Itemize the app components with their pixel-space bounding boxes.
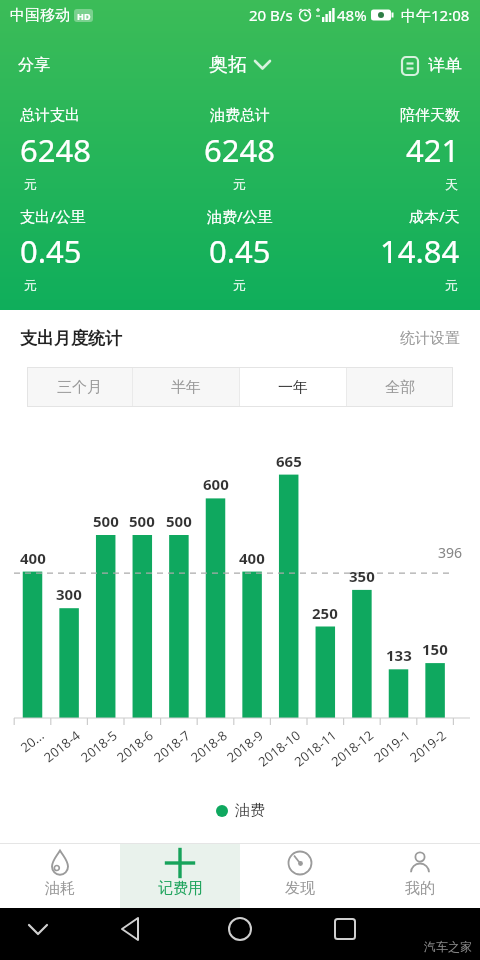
button[interactable]: 详单 — [400, 55, 462, 76]
staticText: 陪伴天数 — [400, 106, 460, 125]
button[interactable]: 一年 — [240, 367, 346, 407]
staticText: 421 — [406, 129, 460, 171]
staticText: 150 — [422, 639, 448, 659]
staticText: 14.84 — [380, 230, 460, 272]
staticText: 665 — [276, 451, 302, 471]
staticText: 天 — [445, 176, 458, 192]
staticText: 元 — [233, 277, 246, 293]
button[interactable]: 统计设置 — [400, 329, 460, 348]
staticText: 500 — [93, 511, 119, 531]
staticText: 发现 — [285, 879, 315, 898]
staticText: HD — [77, 10, 91, 22]
staticText: 2019-1 — [370, 726, 412, 764]
staticText: 分享 — [18, 55, 50, 75]
staticText: 成本/天 — [409, 206, 460, 226]
staticText: 一年 — [278, 378, 308, 397]
button[interactable]: 分享 — [18, 55, 50, 75]
staticText: 6248 — [204, 129, 275, 171]
staticText: 支出月度统计 — [20, 328, 122, 349]
button[interactable]: 油耗 — [0, 844, 120, 908]
staticText: 总计支出 — [20, 106, 80, 125]
staticText: 2018-10 — [254, 726, 302, 768]
staticText: 0.45 — [209, 230, 271, 272]
staticText: 元 — [24, 176, 37, 192]
staticText: 2018-11 — [290, 726, 338, 768]
staticText: 250 — [312, 603, 338, 623]
staticText: 6248 — [20, 129, 91, 171]
staticText: 详单 — [428, 55, 462, 76]
staticText: 元 — [24, 277, 37, 293]
staticText: 2018-9 — [223, 726, 265, 764]
staticText: 400 — [239, 548, 265, 568]
staticText: 2018-8 — [187, 726, 229, 764]
staticText: 2019-2 — [406, 726, 448, 764]
staticText: 油费总计 — [210, 106, 270, 125]
staticText: 支出/公里 — [20, 206, 86, 226]
staticText: 2018-12 — [327, 726, 375, 768]
staticText: 记费用 — [158, 879, 203, 898]
staticText: 600 — [203, 474, 229, 494]
staticText: 350 — [349, 566, 375, 586]
staticText: 2018-4 — [40, 726, 82, 764]
staticText: 我的 — [405, 879, 435, 898]
staticText: 400 — [20, 548, 46, 568]
staticText: 统计设置 — [400, 329, 460, 348]
staticText: 133 — [386, 645, 412, 665]
staticText: 中午12:08 — [401, 5, 470, 25]
staticText: 48% — [337, 5, 367, 25]
button[interactable]: 半年 — [133, 367, 239, 407]
staticText: 396 — [438, 543, 463, 562]
staticText: 500 — [166, 511, 192, 531]
button[interactable]: 我的 — [360, 844, 480, 908]
staticText: 中国移动 — [10, 6, 70, 25]
staticText: 2018-6 — [113, 726, 155, 764]
staticText: 三个月 — [57, 378, 102, 397]
staticText: 奥拓 — [209, 53, 247, 77]
staticText: 半年 — [171, 378, 201, 397]
button[interactable]: 记费用 — [120, 844, 240, 908]
staticText: 元 — [445, 277, 458, 293]
staticText: 0.45 — [20, 230, 82, 272]
button[interactable]: 发现 — [240, 844, 360, 908]
staticText: 500 — [129, 511, 155, 531]
staticText: 20 B/s — [249, 5, 293, 25]
button[interactable]: 三个月 — [27, 367, 132, 407]
staticText: 油费/公里 — [207, 206, 273, 226]
staticText: 300 — [56, 584, 82, 604]
staticText: 元 — [233, 176, 246, 192]
staticText: 油费 — [235, 801, 265, 820]
button[interactable]: 全部 — [347, 367, 453, 407]
button[interactable]: 奥拓 — [209, 53, 271, 77]
staticText: 2018-5 — [77, 726, 119, 764]
staticText: 20... — [16, 726, 46, 754]
staticText: 2018-7 — [150, 726, 192, 764]
staticText: 油耗 — [45, 879, 75, 898]
staticText: 汽车之家 — [424, 939, 472, 954]
staticText: 全部 — [385, 378, 415, 397]
